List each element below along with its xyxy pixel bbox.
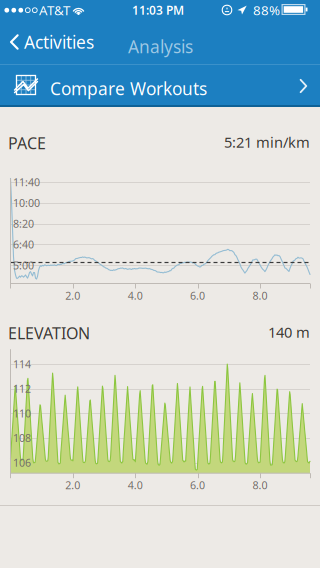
staticText: 2.0 — [65, 288, 80, 303]
staticText: ELEVATION — [8, 322, 90, 344]
staticText: 6:40 — [13, 237, 34, 252]
button[interactable]: Activities — [0, 20, 104, 64]
staticText: 6.0 — [190, 478, 205, 492]
staticText: 11:03 PM — [132, 2, 184, 18]
staticText: 8.0 — [252, 288, 267, 303]
staticText: 88% — [253, 1, 280, 19]
staticText: 8:20 — [13, 217, 34, 231]
staticText: Compare Workouts — [50, 77, 207, 100]
staticText: 5:00 — [13, 258, 34, 272]
staticText: Analysis — [128, 35, 193, 58]
staticText: 112 — [13, 382, 31, 396]
staticText: 6.0 — [190, 288, 205, 303]
staticText: 10:00 — [13, 196, 40, 210]
staticText: 8.0 — [252, 478, 267, 492]
staticText: Activities — [24, 30, 94, 53]
staticText: 114 — [13, 357, 31, 371]
staticText: 2.0 — [65, 478, 80, 492]
button[interactable]: Compare Workouts — [0, 64, 320, 107]
staticText: 5:21 min/km — [224, 132, 310, 152]
staticText: PACE — [8, 132, 46, 154]
staticText: 140 m — [268, 322, 310, 342]
staticText: 108 — [13, 431, 31, 445]
staticText: 110 — [13, 406, 31, 420]
staticText: AT&T — [39, 1, 70, 19]
staticText: 4.0 — [128, 478, 143, 492]
staticText: 4.0 — [128, 288, 143, 303]
staticText: 106 — [13, 455, 31, 470]
staticText: 11:40 — [13, 175, 40, 189]
